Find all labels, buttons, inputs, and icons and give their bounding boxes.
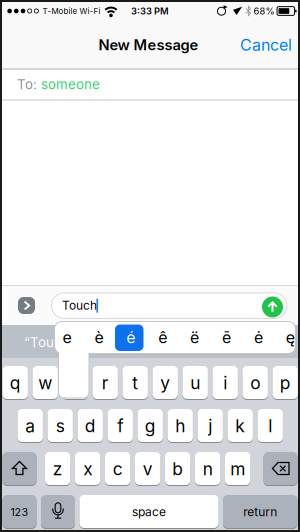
staticText: é <box>126 328 135 347</box>
staticText: w <box>38 373 52 393</box>
staticText: someone <box>41 77 100 92</box>
button[interactable] <box>263 452 297 486</box>
button[interactable]: d <box>77 409 103 443</box>
button[interactable]: m <box>225 452 250 486</box>
staticText: 3:33 PM <box>131 5 169 16</box>
button[interactable]: Cancel <box>231 30 300 60</box>
button[interactable]: 123 <box>2 495 36 529</box>
staticText: ė <box>254 328 263 347</box>
staticText: Touch <box>62 298 97 313</box>
button[interactable]: return <box>223 495 297 529</box>
staticText: s <box>56 416 65 436</box>
button[interactable]: k <box>227 409 253 443</box>
button[interactable]: Touch <box>51 293 287 318</box>
button[interactable] <box>2 452 36 486</box>
button[interactable]: l <box>257 409 283 443</box>
button[interactable]: z <box>45 452 70 486</box>
staticText: h <box>175 416 185 436</box>
button[interactable]: ê <box>148 323 178 351</box>
staticText: Cancel <box>240 36 292 54</box>
staticText: e <box>62 328 71 347</box>
button[interactable]: g <box>137 409 163 443</box>
staticText: t <box>132 373 138 393</box>
button[interactable]: p <box>272 366 298 400</box>
staticText: u <box>190 373 200 393</box>
staticText: 68% <box>253 5 274 16</box>
button[interactable]: a <box>17 409 43 443</box>
staticText: i <box>223 373 227 393</box>
button[interactable]: q <box>2 366 28 400</box>
button[interactable]: b <box>165 452 190 486</box>
button[interactable]: ė <box>243 323 273 351</box>
button[interactable]: u <box>182 366 208 400</box>
staticText: o <box>250 373 260 393</box>
staticText: c <box>113 459 123 479</box>
button[interactable]: e <box>62 366 88 400</box>
button[interactable]: space <box>79 495 218 529</box>
staticText: space <box>132 505 166 519</box>
button[interactable]: t <box>122 366 148 400</box>
button[interactable] <box>41 495 75 529</box>
staticText: New Message <box>98 36 198 54</box>
staticText: d <box>85 416 96 436</box>
button[interactable]: “Touch” <box>24 325 124 360</box>
button[interactable] <box>18 297 35 314</box>
button[interactable]: i <box>212 366 238 400</box>
staticText: f <box>117 416 123 436</box>
staticText: “Touch” <box>24 335 76 350</box>
button[interactable]: x <box>75 452 100 486</box>
staticText: r <box>102 373 109 393</box>
button[interactable]: ę <box>275 323 300 351</box>
button[interactable]: f <box>107 409 133 443</box>
staticText: n <box>203 459 213 479</box>
button[interactable]: n <box>195 452 220 486</box>
staticText: g <box>145 416 156 436</box>
staticText: ê <box>158 328 167 347</box>
staticText: To: <box>17 77 37 92</box>
button[interactable]: o <box>242 366 268 400</box>
staticText: ē <box>222 328 231 347</box>
staticText: l <box>268 416 272 436</box>
button[interactable]: è <box>84 323 114 351</box>
button[interactable]: y <box>152 366 178 400</box>
staticText: m <box>230 459 245 479</box>
button[interactable]: To: <box>2 69 298 99</box>
button[interactable]: é <box>116 323 146 351</box>
button[interactable]: e <box>52 323 82 351</box>
button[interactable]: w <box>32 366 58 400</box>
button[interactable]: v <box>135 452 160 486</box>
button[interactable]: c <box>105 452 130 486</box>
staticText: ę <box>286 328 295 347</box>
button[interactable]: r <box>92 366 118 400</box>
button[interactable]: s <box>47 409 73 443</box>
staticText: k <box>235 416 245 436</box>
button[interactable]: ē <box>211 323 241 351</box>
staticText: T-Mobile Wi-Fi <box>42 6 100 16</box>
staticText: è <box>94 328 103 347</box>
staticText: x <box>83 459 92 479</box>
staticText: p <box>280 373 291 393</box>
staticText: ë <box>190 328 199 347</box>
staticText: j <box>208 416 212 436</box>
button[interactable]: h <box>167 409 193 443</box>
button[interactable]: j <box>197 409 223 443</box>
staticText: a <box>25 416 35 436</box>
staticText: v <box>143 459 153 479</box>
staticText: q <box>10 373 21 393</box>
staticText: y <box>160 373 170 393</box>
button[interactable] <box>262 296 283 317</box>
button[interactable]: ë <box>180 323 210 351</box>
staticText: z <box>53 459 63 479</box>
staticText: 123 <box>10 506 28 518</box>
staticText: b <box>172 459 183 479</box>
staticText: return <box>243 505 277 519</box>
